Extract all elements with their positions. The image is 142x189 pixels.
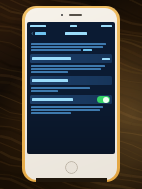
button[interactable]: Optimised charging toggle, on xyxy=(97,96,110,103)
other: Back xyxy=(31,32,34,35)
button[interactable] xyxy=(30,54,112,63)
button[interactable]: Optimised charging toggle, on xyxy=(30,95,112,104)
button[interactable]: Back xyxy=(30,31,47,36)
button[interactable] xyxy=(30,76,112,85)
button[interactable]: Home xyxy=(65,161,78,174)
button[interactable] xyxy=(83,49,92,51)
